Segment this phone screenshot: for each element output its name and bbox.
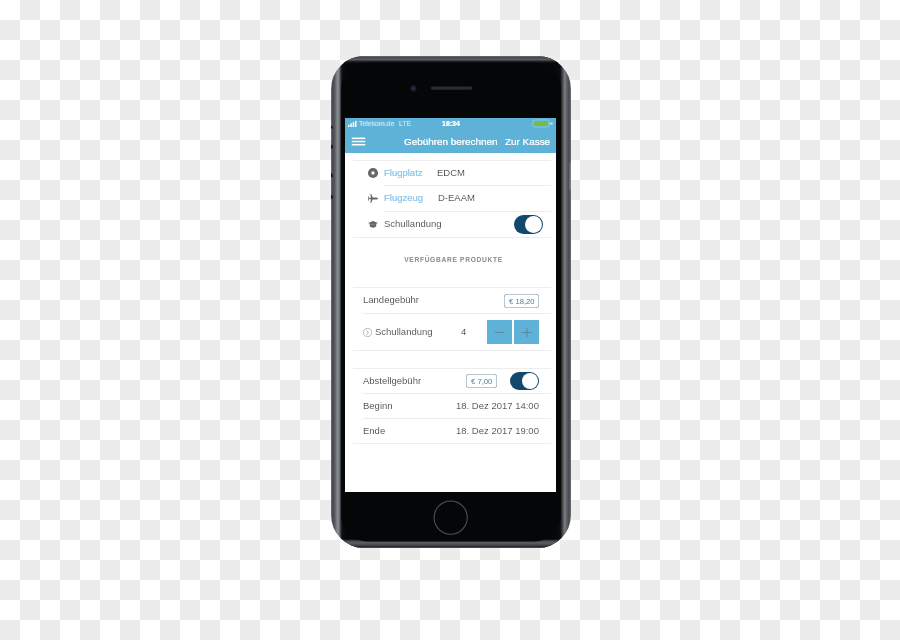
staticText: Flugplatz bbox=[384, 167, 423, 178]
button[interactable]: Zur Kasse bbox=[505, 136, 551, 147]
staticText: Telekom.de bbox=[359, 120, 395, 128]
staticText: 18. Dez 2017 14:00 bbox=[456, 400, 539, 411]
staticText: LTE bbox=[399, 120, 412, 128]
staticText: Ende bbox=[363, 425, 386, 436]
staticText: 4 bbox=[461, 326, 467, 337]
staticText: EDCM bbox=[437, 167, 465, 178]
button[interactable]: Schullandung bbox=[345, 314, 556, 350]
button[interactable]: Increase bbox=[514, 320, 539, 344]
button[interactable]: Decrease bbox=[487, 320, 512, 344]
staticText: Flugzeug bbox=[384, 192, 424, 203]
button[interactable]: Ende bbox=[345, 419, 556, 443]
button[interactable]: Abstellgebühr bbox=[345, 369, 556, 393]
staticText: Schullandung bbox=[384, 218, 442, 229]
button[interactable]: € 7,00 bbox=[466, 374, 497, 388]
staticText: Abstellgebühr bbox=[363, 375, 422, 386]
button[interactable]: Toggle bbox=[510, 372, 539, 390]
button[interactable]: Flugplatz bbox=[345, 161, 556, 185]
button[interactable]: Schullandung bbox=[345, 212, 556, 237]
staticText: Schullandung bbox=[375, 326, 433, 337]
button[interactable]: Beginn bbox=[345, 394, 556, 418]
button[interactable]: Menu bbox=[350, 133, 367, 150]
button[interactable]: € 18,20 bbox=[504, 294, 539, 308]
staticText: Zur Kasse bbox=[505, 136, 551, 147]
staticText: Landegebühr bbox=[363, 294, 419, 305]
staticText: Beginn bbox=[363, 400, 393, 411]
staticText: 18. Dez 2017 19:00 bbox=[456, 425, 539, 436]
button[interactable]: Landegebühr bbox=[345, 288, 556, 313]
button[interactable]: Toggle bbox=[514, 215, 543, 234]
staticText: VERFÜGBARE PRODUKTE bbox=[348, 256, 559, 263]
staticText: € 18,20 bbox=[509, 297, 535, 306]
staticText: D-EAAM bbox=[438, 192, 475, 203]
button[interactable]: Flugzeug bbox=[345, 186, 556, 211]
staticText: Gebühren berechnen bbox=[404, 136, 498, 147]
staticText: € 7,00 bbox=[471, 377, 493, 386]
staticText: 16:34 bbox=[442, 120, 460, 128]
